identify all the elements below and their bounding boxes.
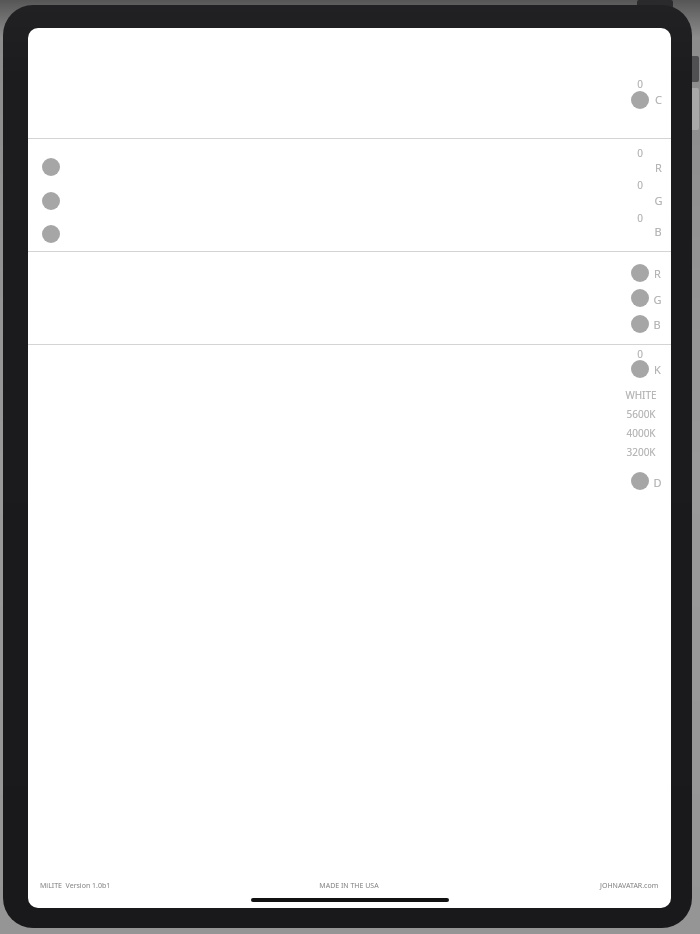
button[interactable]: [631, 91, 649, 109]
staticText: 3200K: [626, 445, 656, 459]
button[interactable]: [42, 225, 60, 243]
staticText: MADE IN THE USA: [319, 881, 379, 891]
button[interactable]: [631, 289, 649, 307]
button[interactable]: [42, 158, 60, 176]
staticText: 0: [637, 77, 643, 91]
button[interactable]: 3200K: [601, 442, 681, 462]
staticText: 0: [637, 178, 643, 192]
staticText: MiLITE Version 1.0b1: [40, 881, 111, 891]
staticText: 0: [637, 146, 643, 160]
staticText: JOHNAVATAR.com: [600, 881, 659, 891]
staticText: 4000K: [626, 426, 656, 440]
staticText: B: [653, 317, 661, 332]
staticText: R: [654, 266, 661, 281]
staticText: R: [655, 160, 662, 175]
staticText: B: [654, 224, 662, 239]
button[interactable]: 5600K: [601, 404, 681, 424]
staticText: G: [654, 193, 663, 208]
button[interactable]: WHITE: [601, 385, 681, 405]
button[interactable]: [631, 472, 649, 490]
button[interactable]: [631, 315, 649, 333]
staticText: 0: [637, 211, 643, 225]
staticText: 5600K: [626, 407, 656, 421]
staticText: D: [653, 475, 662, 490]
button[interactable]: [251, 898, 449, 902]
button[interactable]: [42, 192, 60, 210]
staticText: 0: [637, 347, 643, 361]
staticText: C: [655, 92, 662, 107]
button[interactable]: [631, 264, 649, 282]
button[interactable]: [631, 360, 649, 378]
button[interactable]: 4000K: [601, 423, 681, 443]
staticText: K: [654, 362, 661, 377]
staticText: G: [653, 292, 662, 307]
staticText: WHITE: [625, 388, 657, 402]
